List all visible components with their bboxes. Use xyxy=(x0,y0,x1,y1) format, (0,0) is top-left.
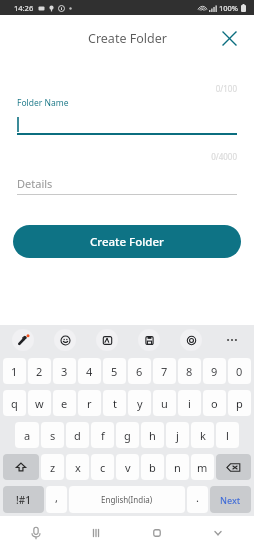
button[interactable]: 8 xyxy=(178,358,201,384)
staticText: t xyxy=(113,396,117,411)
button[interactable]: Recents xyxy=(66,516,126,550)
staticText: a xyxy=(24,428,31,443)
button[interactable]: f xyxy=(91,422,114,448)
staticText: b xyxy=(149,460,156,475)
staticText: 2 xyxy=(36,364,43,379)
staticText: . xyxy=(196,490,199,505)
staticText: Details xyxy=(17,176,53,191)
staticText: 9 xyxy=(211,364,218,379)
staticText: z xyxy=(50,460,56,475)
button[interactable]: Create Folder xyxy=(13,225,241,258)
button[interactable]: j xyxy=(166,422,189,448)
button[interactable]: g xyxy=(116,422,139,448)
staticText: n xyxy=(174,460,181,475)
button[interactable]: a xyxy=(15,422,39,448)
button[interactable]: Hide keyboard xyxy=(187,516,248,550)
button[interactable]: l xyxy=(216,422,239,448)
button[interactable]: AI suggestions xyxy=(12,329,34,351)
button[interactable]: i xyxy=(178,390,201,416)
button[interactable]: , xyxy=(46,486,67,513)
staticText: 4 xyxy=(86,364,93,379)
button[interactable]: Settings xyxy=(180,329,202,351)
button[interactable]: n xyxy=(166,454,189,480)
button[interactable]: Emoji xyxy=(54,329,76,351)
button[interactable]: d xyxy=(66,422,89,448)
staticText: 8 xyxy=(186,364,193,379)
staticText: English(India) xyxy=(101,494,153,505)
button[interactable]: Space xyxy=(69,486,185,513)
button[interactable]: 0 xyxy=(228,358,251,384)
staticText: m xyxy=(197,460,208,475)
staticText: k xyxy=(200,428,206,443)
staticText: d xyxy=(74,428,81,443)
button[interactable]: Voice input xyxy=(6,516,66,550)
staticText: 1 xyxy=(11,364,18,379)
staticText: 0/4000 xyxy=(17,151,237,162)
button[interactable]: 5 xyxy=(103,358,126,384)
button[interactable]: Backspace xyxy=(216,454,251,480)
button[interactable]: z xyxy=(41,454,64,480)
button[interactable]: s xyxy=(41,422,64,448)
button[interactable]: 2 xyxy=(28,358,51,384)
staticText: y xyxy=(137,396,143,411)
button[interactable]: 1 xyxy=(3,358,26,384)
staticText: l xyxy=(226,428,229,443)
staticText: j xyxy=(176,428,179,443)
staticText: v xyxy=(125,460,131,475)
button[interactable]: !#1 xyxy=(3,486,44,513)
staticText: , xyxy=(55,490,58,505)
staticText: p xyxy=(236,396,243,411)
staticText: Create Folder xyxy=(90,234,164,250)
button[interactable]: u xyxy=(153,390,176,416)
button[interactable]: b xyxy=(141,454,164,480)
staticText: 5 xyxy=(111,364,118,379)
button[interactable]: y xyxy=(128,390,151,416)
button[interactable]: Home xyxy=(126,516,187,550)
button[interactable]: x xyxy=(66,454,89,480)
staticText: Next xyxy=(220,494,241,506)
staticText: e xyxy=(61,396,68,411)
staticText: 0 xyxy=(236,364,243,379)
button[interactable]: e xyxy=(53,390,76,416)
staticText: 3 xyxy=(61,364,68,379)
staticText: 0/100 xyxy=(17,83,237,94)
button[interactable]: 6 xyxy=(128,358,151,384)
button[interactable]: h xyxy=(141,422,164,448)
button[interactable]: 7 xyxy=(153,358,176,384)
staticText: 100% xyxy=(219,3,239,13)
button[interactable]: w xyxy=(28,390,51,416)
staticText: f xyxy=(101,428,105,443)
staticText: r xyxy=(87,396,92,411)
staticText: q xyxy=(11,396,18,411)
staticText: 14:26 xyxy=(14,3,34,13)
staticText: g xyxy=(124,428,131,443)
button[interactable]: . xyxy=(187,486,208,513)
button[interactable]: t xyxy=(103,390,126,416)
button[interactable]: Details xyxy=(17,176,237,191)
button[interactable]: c xyxy=(91,454,114,480)
staticText: s xyxy=(50,428,56,443)
button[interactable]: 3 xyxy=(53,358,76,384)
button[interactable]: m xyxy=(191,454,214,480)
button[interactable]: Clipboard xyxy=(138,329,160,351)
button[interactable]: Translate xyxy=(96,329,118,351)
button[interactable]: p xyxy=(228,390,251,416)
button[interactable]: v xyxy=(116,454,139,480)
staticText: 6 xyxy=(136,364,143,379)
button[interactable]: More options xyxy=(222,330,242,350)
button[interactable]: q xyxy=(3,390,26,416)
button[interactable]: r xyxy=(78,390,101,416)
button[interactable]: Close xyxy=(216,25,242,51)
button[interactable]: Shift xyxy=(3,454,39,480)
button[interactable]: 4 xyxy=(78,358,101,384)
button[interactable] xyxy=(17,116,237,133)
staticText: !#1 xyxy=(16,493,31,507)
button[interactable]: k xyxy=(191,422,214,448)
staticText: Folder Name xyxy=(17,97,69,109)
staticText: h xyxy=(149,428,156,443)
staticText: c xyxy=(100,460,106,475)
button[interactable]: o xyxy=(203,390,226,416)
button[interactable]: Next xyxy=(210,486,251,513)
button[interactable]: 9 xyxy=(203,358,226,384)
staticText: w xyxy=(35,396,44,411)
